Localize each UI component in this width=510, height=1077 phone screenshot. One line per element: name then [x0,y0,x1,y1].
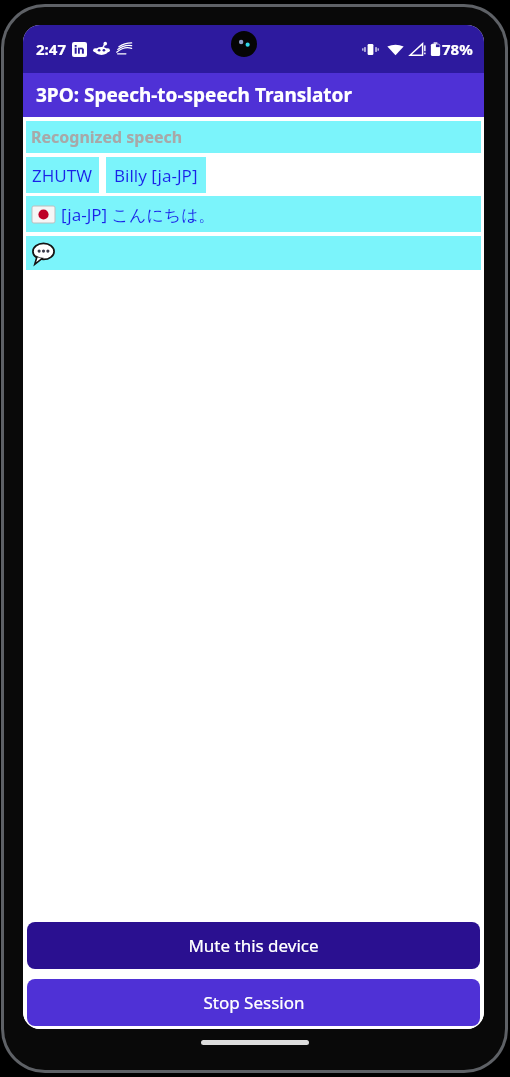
button[interactable]: Billy [ja-JP] [106,157,206,193]
staticText: 78% [442,39,473,59]
button[interactable]: Stop Session [27,979,480,1026]
staticText: Stop Session [203,991,305,1014]
button[interactable] [26,236,481,270]
button[interactable]: ZHUTW [26,157,99,193]
staticText: Billy [ja-JP] [114,164,198,187]
staticText: 2:47 [36,39,66,59]
button[interactable]: [ja-JP] こんにちは。 [26,196,481,232]
staticText: 3PO: Speech-to-speech Translator [36,82,352,108]
staticText: ZHUTW [32,164,93,187]
button[interactable]: Recognized speech [26,121,481,153]
staticText: Recognized speech [31,126,183,148]
button[interactable]: Mute this device [27,922,480,969]
staticText: Mute this device [188,934,319,957]
staticText: [ja-JP] こんにちは。 [61,203,216,226]
